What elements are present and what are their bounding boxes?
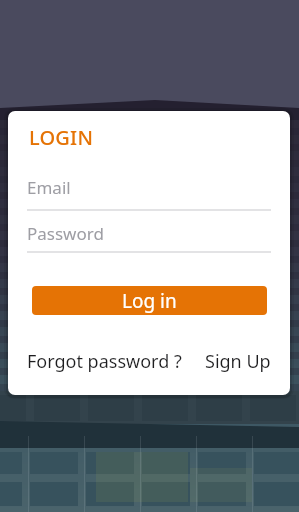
- button[interactable]: Email: [27, 169, 271, 211]
- button[interactable]: Password: [27, 219, 271, 253]
- staticText: Email: [27, 176, 71, 199]
- staticText: Forgot password ?: [27, 349, 182, 374]
- button[interactable]: Sign Up: [205, 349, 271, 374]
- staticText: Sign Up: [205, 349, 271, 374]
- button[interactable]: Log in: [32, 286, 267, 315]
- staticText: LOGIN: [29, 124, 94, 151]
- staticText: Log in: [122, 288, 177, 314]
- staticText: Password: [27, 222, 104, 245]
- button[interactable]: Forgot password ?: [27, 349, 182, 374]
